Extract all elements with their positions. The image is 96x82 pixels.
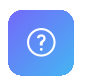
button[interactable]: Help [8,10,73,75]
